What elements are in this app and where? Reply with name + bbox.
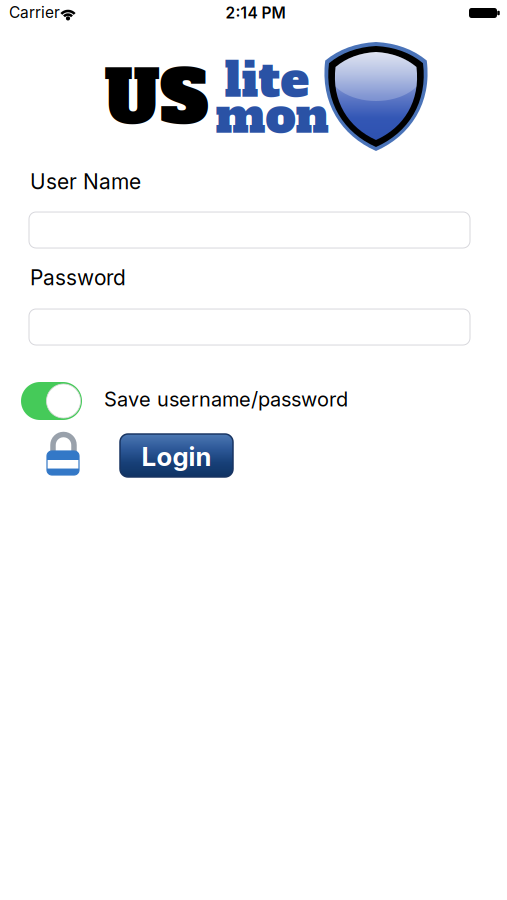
staticText: Login — [141, 441, 211, 472]
staticText: mon — [215, 83, 328, 149]
staticText: User Name — [30, 169, 141, 194]
staticText: 2:14 PM — [225, 3, 285, 22]
button[interactable] — [20, 381, 82, 421]
staticText: Password — [30, 265, 126, 290]
staticText: US — [104, 49, 209, 147]
button[interactable] — [29, 309, 470, 345]
button[interactable]: Login — [120, 434, 233, 477]
button[interactable] — [29, 212, 470, 248]
staticText: Save username/password — [104, 387, 348, 411]
staticText: Carrier — [9, 3, 60, 22]
staticText: lite — [224, 47, 309, 113]
